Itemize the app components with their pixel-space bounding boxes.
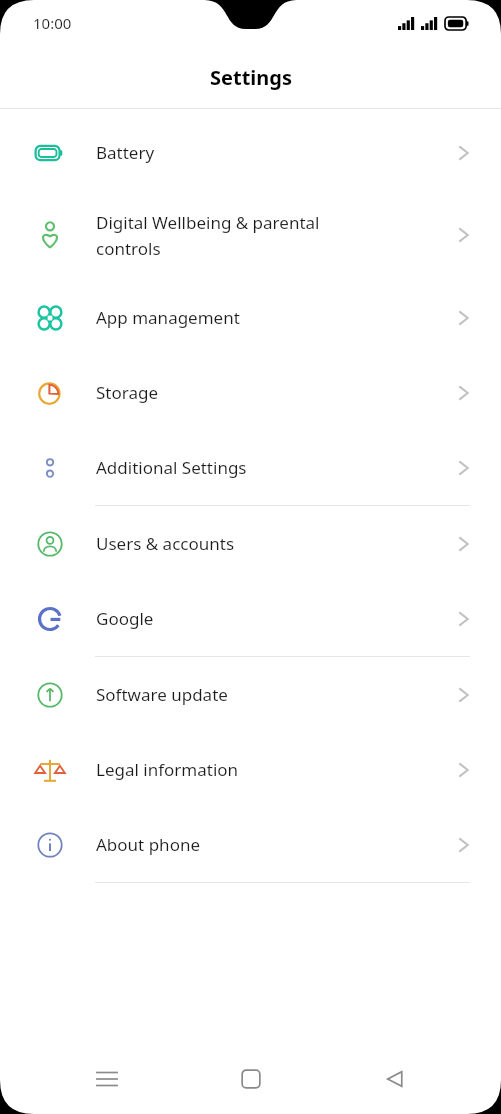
button[interactable]: Google [0, 581, 501, 656]
button[interactable]: Home [227, 1055, 275, 1103]
staticText: Users & accounts [96, 532, 449, 555]
staticText: App management [96, 306, 449, 329]
staticText: Digital Wellbeing & parental controls [96, 211, 449, 260]
button[interactable]: Users & accounts [0, 506, 501, 581]
staticText: Legal information [96, 758, 449, 781]
button[interactable]: Battery [0, 115, 501, 190]
staticText: Settings [210, 64, 292, 91]
button[interactable]: Additional Settings [0, 430, 501, 505]
button[interactable]: Legal information [0, 732, 501, 807]
staticText: Software update [96, 683, 449, 706]
button[interactable]: Recent apps [83, 1055, 131, 1103]
button[interactable]: About phone [0, 807, 501, 882]
button[interactable]: Digital Wellbeing & parental controls [0, 190, 501, 280]
button[interactable]: App management [0, 280, 501, 355]
staticText: Battery [96, 141, 449, 164]
button[interactable]: Storage [0, 355, 501, 430]
staticText: About phone [96, 833, 449, 856]
staticText: Google [96, 607, 449, 630]
staticText: 10:00 [33, 13, 72, 33]
button[interactable]: Software update [0, 657, 501, 732]
staticText: Storage [96, 381, 449, 404]
button[interactable]: Back [371, 1055, 419, 1103]
staticText: Additional Settings [96, 456, 449, 479]
